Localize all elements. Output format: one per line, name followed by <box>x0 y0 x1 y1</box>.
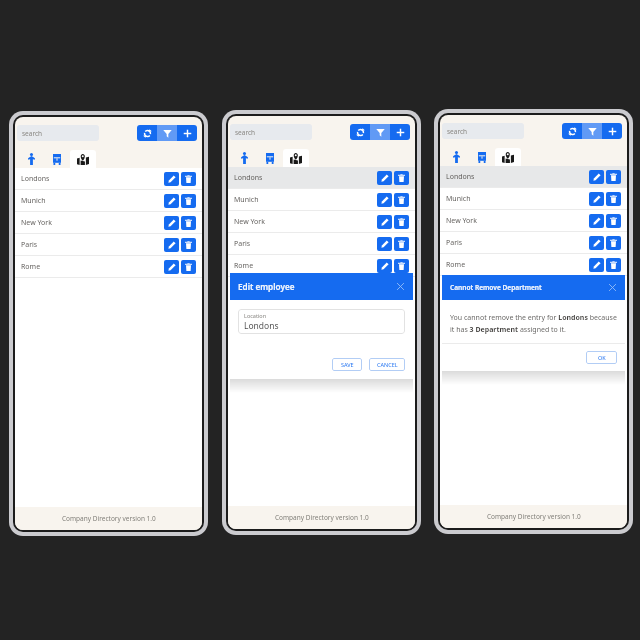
button[interactable]: Add <box>177 125 197 141</box>
button[interactable]: Edit <box>589 236 604 250</box>
button[interactable]: Refresh <box>562 123 582 139</box>
staticText: Company Directory version 1.0 <box>275 513 369 522</box>
button[interactable]: Edit <box>164 260 179 274</box>
button[interactable]: Delete <box>181 238 196 252</box>
button[interactable]: Delete <box>181 260 196 274</box>
button[interactable]: search <box>442 123 524 139</box>
button[interactable]: People <box>443 148 469 166</box>
staticText: Londons <box>21 174 50 184</box>
button[interactable]: search <box>230 124 312 140</box>
button[interactable]: SAVE <box>332 358 362 371</box>
staticText: Rome <box>234 261 254 271</box>
button[interactable]: search <box>17 125 99 141</box>
button[interactable]: Londons <box>15 168 202 190</box>
button[interactable]: Add <box>602 123 622 139</box>
button[interactable]: Delete <box>606 170 621 184</box>
staticText: search <box>22 129 43 138</box>
button[interactable]: Delete <box>181 216 196 230</box>
button[interactable]: Rome <box>440 254 627 276</box>
button[interactable]: Departments <box>44 150 70 168</box>
staticText: Londons <box>244 320 279 332</box>
button[interactable]: Locations <box>283 149 309 167</box>
button[interactable]: CANCEL <box>369 358 405 371</box>
staticText: OK <box>598 354 606 361</box>
staticText: CANCEL <box>377 361 398 368</box>
button[interactable]: Filter <box>582 123 602 139</box>
button[interactable]: Refresh <box>350 124 370 140</box>
button[interactable]: Add <box>390 124 410 140</box>
button[interactable]: OK <box>586 351 617 364</box>
button[interactable]: Departments <box>469 148 495 166</box>
button[interactable]: Edit <box>589 258 604 272</box>
button[interactable]: Edit <box>589 192 604 206</box>
button[interactable]: Edit <box>377 237 392 251</box>
button[interactable]: Paris <box>228 233 415 255</box>
button[interactable]: Close <box>605 280 620 295</box>
button[interactable]: Paris <box>440 232 627 254</box>
button[interactable]: Delete <box>394 215 409 229</box>
button[interactable]: People <box>231 149 257 167</box>
button[interactable]: Delete <box>394 259 409 273</box>
button[interactable]: Edit <box>164 194 179 208</box>
button[interactable]: Rome <box>228 255 415 277</box>
staticText: Paris <box>21 240 38 250</box>
staticText: Munich <box>234 195 259 205</box>
button[interactable]: Rome <box>15 256 202 278</box>
button[interactable]: Delete <box>394 237 409 251</box>
staticText: Paris <box>446 238 463 248</box>
staticText: Company Directory version 1.0 <box>62 514 156 523</box>
staticText: Company Directory version 1.0 <box>487 512 581 521</box>
button[interactable]: Delete <box>606 236 621 250</box>
staticText: Munich <box>21 196 46 206</box>
staticText: Cannot Remove Department <box>450 283 542 292</box>
staticText: Londons <box>446 172 475 182</box>
button[interactable]: Delete <box>606 258 621 272</box>
staticText: Munich <box>446 194 471 204</box>
button[interactable]: New York <box>228 211 415 233</box>
staticText: You cannot remove the entry for Londons … <box>450 313 618 334</box>
button[interactable]: Edit <box>589 170 604 184</box>
button[interactable]: Munich <box>440 188 627 210</box>
button[interactable]: Delete <box>181 172 196 186</box>
staticText: New York <box>234 217 265 227</box>
button[interactable]: Munich <box>228 189 415 211</box>
button[interactable]: Filter <box>370 124 390 140</box>
button[interactable]: Delete <box>394 193 409 207</box>
button[interactable]: Close <box>393 279 408 294</box>
button[interactable]: Locations <box>70 150 96 168</box>
button[interactable]: Locations <box>495 148 521 166</box>
staticText: search <box>235 128 256 137</box>
button[interactable]: Filter <box>157 125 177 141</box>
button[interactable]: People <box>18 150 44 168</box>
staticText: New York <box>21 218 52 228</box>
button[interactable]: New York <box>440 210 627 232</box>
button[interactable]: Delete <box>606 192 621 206</box>
button[interactable]: Delete <box>181 194 196 208</box>
button[interactable]: Munich <box>15 190 202 212</box>
staticText: search <box>447 127 468 136</box>
staticText: Paris <box>234 239 251 249</box>
button[interactable]: Edit <box>377 193 392 207</box>
button[interactable]: Delete <box>394 171 409 185</box>
staticText: Rome <box>21 262 41 272</box>
button[interactable]: Edit <box>377 171 392 185</box>
button[interactable]: Londons <box>440 166 627 188</box>
button[interactable]: Londons <box>228 167 415 189</box>
button[interactable]: New York <box>15 212 202 234</box>
button[interactable]: Edit <box>164 238 179 252</box>
staticText: New York <box>446 216 477 226</box>
staticText: Londons <box>234 173 263 183</box>
button[interactable]: Delete <box>606 214 621 228</box>
button[interactable]: Edit <box>377 259 392 273</box>
staticText: SAVE <box>341 361 354 368</box>
staticText: Edit employee <box>238 281 295 292</box>
button[interactable]: Edit <box>164 216 179 230</box>
button[interactable]: Edit <box>589 214 604 228</box>
button[interactable]: Departments <box>257 149 283 167</box>
staticText: Rome <box>446 260 466 270</box>
button[interactable]: Paris <box>15 234 202 256</box>
button[interactable]: Refresh <box>137 125 157 141</box>
button[interactable]: Edit <box>377 215 392 229</box>
staticText: Location <box>244 312 267 319</box>
button[interactable]: Edit <box>164 172 179 186</box>
